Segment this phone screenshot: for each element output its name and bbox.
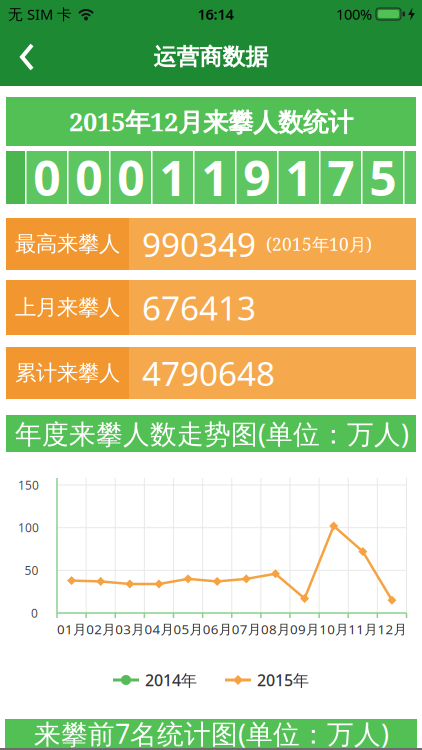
staticText: 01月 — [57, 620, 86, 638]
staticText: 无 SIM 卡 — [8, 4, 72, 24]
staticText: 9 — [243, 146, 270, 209]
staticText: 运营商数据 — [153, 43, 268, 71]
staticText: 1 — [285, 146, 312, 209]
staticText: 09月 — [290, 620, 319, 638]
staticText: 2015年 — [257, 669, 309, 691]
staticText: 最高来攀人 — [15, 231, 120, 257]
staticText: 03月 — [115, 620, 144, 638]
staticText: 2014年 — [145, 669, 197, 691]
staticText: 1 — [159, 146, 186, 209]
staticText: 150 — [18, 477, 39, 493]
staticText: 990349 — [142, 222, 256, 266]
staticText: 100% — [336, 4, 372, 24]
staticText: 年度来攀人数走势图(单位：万人) — [15, 416, 409, 451]
staticText: 02月 — [86, 620, 115, 638]
button[interactable]: Back — [0, 34, 35, 80]
staticText: 10月 — [319, 620, 348, 638]
staticText: 1 — [201, 146, 228, 209]
staticText: 累计来攀人 — [15, 360, 120, 386]
staticText: 上月来攀人 — [15, 294, 120, 321]
staticText: 12月 — [377, 620, 406, 638]
staticText: 100 — [18, 520, 39, 536]
staticText: 0 — [117, 146, 144, 209]
staticText: 07月 — [232, 620, 261, 638]
staticText: 04月 — [144, 620, 173, 638]
staticText: 05月 — [174, 620, 203, 638]
staticText: 0 — [33, 146, 60, 209]
staticText: 7 — [327, 146, 354, 209]
staticText: 11月 — [348, 620, 377, 638]
staticText: 来攀前7名统计图(单位：万人) — [34, 716, 389, 750]
staticText: 2015年12月来攀人数统计 — [69, 104, 353, 139]
staticText: 0 — [31, 605, 38, 621]
staticText: 50 — [24, 562, 38, 578]
staticText: 4790648 — [142, 351, 275, 395]
staticText: 676413 — [142, 285, 256, 330]
staticText: 0 — [75, 146, 102, 209]
staticText: 08月 — [261, 620, 290, 638]
staticText: 06月 — [203, 620, 232, 638]
staticText: (2015年10月) — [266, 232, 372, 256]
staticText: 16:14 — [197, 4, 233, 24]
staticText: 5 — [369, 146, 396, 209]
